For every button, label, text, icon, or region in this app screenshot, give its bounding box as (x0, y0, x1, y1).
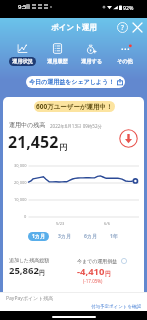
staticText: 円 (59, 142, 67, 152)
staticText: その他 (117, 58, 133, 65)
staticText: ? (121, 23, 124, 32)
staticText: 運用中の残高 (9, 121, 46, 129)
button[interactable]: 600万ユーザーが運用中！ (34, 101, 115, 112)
staticText: 3カ月 (58, 233, 71, 240)
staticText: 追加した残高総額 (9, 257, 50, 263)
button[interactable]: 運用状況 (5, 42, 40, 67)
staticText: 1カ月 (32, 233, 45, 240)
button[interactable]: 3カ月 (54, 232, 75, 241)
staticText: 25,862 (9, 264, 39, 277)
button[interactable]: 今日の運用益をシェアしよう！ (26, 76, 125, 88)
button[interactable]: Withdraw points (118, 128, 138, 148)
button[interactable]: 運用する (74, 42, 108, 67)
button[interactable]: 1年 (106, 232, 122, 241)
staticText: 5/23 (56, 221, 65, 226)
staticText: -4,410 (77, 265, 105, 278)
staticText: 今までの運用損益 (77, 258, 118, 264)
staticText: 円 (105, 270, 111, 278)
staticText: 9:52 (18, 3, 30, 11)
staticText: 2022年6月13日 09時52分 (50, 123, 102, 129)
staticText: 20,000 (14, 180, 27, 185)
button[interactable]: Info (120, 257, 127, 264)
button[interactable]: 6カ月 (80, 232, 101, 241)
staticText: 1年 (110, 233, 118, 240)
staticText: 21,452 (8, 131, 59, 153)
staticText: 30,000 (14, 163, 27, 168)
staticText: 運用する (81, 58, 102, 65)
staticText: 6カ月 (84, 233, 97, 240)
staticText: 600万ユーザーが運用中！ (36, 102, 113, 111)
staticText: 0 (24, 214, 27, 219)
staticText: 運用履歴 (47, 58, 68, 65)
button[interactable]: その他 (108, 42, 142, 67)
staticText: PayPayポイント残高 (6, 295, 54, 302)
staticText: 10,000 (14, 197, 27, 202)
staticText: 運用状況 (12, 58, 33, 65)
staticText: 今日の運用益をシェアしよう！ (29, 78, 115, 86)
staticText: ポイント運用 (51, 23, 97, 32)
button[interactable]: Help (115, 20, 130, 35)
button[interactable]: 運用履歴 (40, 42, 74, 67)
staticText: (-17.05%) (83, 278, 103, 284)
staticText: 6/6 (104, 221, 111, 226)
staticText: 92% (123, 4, 134, 11)
staticText: 円 (39, 269, 45, 277)
button[interactable]: 付与予定ポイントを確認 (91, 304, 142, 310)
button[interactable]: Close (130, 20, 145, 35)
button[interactable]: 1カ月 (28, 232, 49, 241)
